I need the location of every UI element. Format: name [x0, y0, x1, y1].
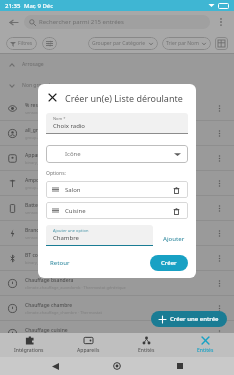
staticText: BT connexion	[25, 252, 58, 259]
staticText: 21:35	[5, 2, 21, 10]
button[interactable]: Options de all_grouped_persons	[213, 127, 226, 140]
button[interactable]: Ampoule entrée	[0, 171, 234, 195]
staticText: Options:	[46, 170, 66, 177]
staticText: binary_sensor.bt	[25, 260, 56, 265]
button[interactable]: Chauffage chambre	[0, 296, 234, 320]
button[interactable]: Colonnes	[215, 37, 228, 50]
staticText: group.ampoule_entree	[25, 185, 69, 190]
staticText: Entités	[138, 347, 155, 354]
staticText: sensor.charge_state	[25, 235, 63, 240]
button[interactable]: Filtres	[6, 37, 37, 50]
staticText: all_grouped_persons	[25, 127, 75, 134]
button[interactable]: Options de Chauffage cuisine	[213, 327, 226, 340]
staticText: Choix radio	[53, 122, 86, 130]
button[interactable]: Supprimer Salon	[170, 184, 182, 196]
staticText: Mar, 9 Déc	[24, 2, 54, 10]
staticText: Entités	[197, 347, 214, 354]
staticText: binary_sensor.cam	[25, 160, 60, 165]
button[interactable]: Appareil photo salon	[0, 146, 234, 170]
staticText: Créer	[161, 259, 177, 267]
button[interactable]: Créer	[150, 255, 188, 271]
button[interactable]: Chauffage cuisine	[0, 321, 234, 345]
staticText: Ampoule entrée	[25, 177, 64, 184]
staticText: Nom *	[53, 116, 66, 121]
staticText: Appareil photo salon	[25, 152, 75, 159]
button[interactable]: all_grouped_persons	[0, 121, 234, 145]
staticText: Icône	[65, 150, 81, 158]
staticText: Ajouter	[163, 235, 185, 243]
button[interactable]: Supprimer Cuisine	[170, 205, 182, 217]
staticText: Retour	[50, 259, 70, 267]
button[interactable]: Icône	[46, 145, 188, 163]
button[interactable]: Chauffage bsandera	[0, 271, 234, 295]
button[interactable]: Entités	[117, 333, 175, 357]
staticText: Appareils	[77, 347, 100, 354]
button[interactable]: Retour	[47, 358, 63, 374]
button[interactable]: Options de Brancher le chargeur	[213, 227, 226, 240]
staticText: Grouper par Catégorie	[92, 40, 146, 47]
staticText: climate.chauffage_cuisine	[25, 335, 74, 340]
staticText: Chauffage bsandera	[25, 277, 74, 284]
staticText: Filtres	[18, 40, 33, 47]
staticText: sensor.batterie_tel	[25, 210, 60, 215]
button[interactable]: Entités	[176, 333, 234, 357]
button[interactable]: Retour	[6, 15, 20, 29]
button[interactable]: Plus d'options	[214, 15, 228, 29]
staticText: Chauffage chambre	[25, 302, 73, 309]
button[interactable]: Fermer	[46, 91, 59, 104]
button[interactable]: Options de Appareil photo salon	[213, 152, 226, 165]
button[interactable]: Options de % restant batterie	[213, 102, 226, 115]
button[interactable]: Rechercher parmi 215 entrées	[24, 15, 210, 29]
button[interactable]: Appareils	[59, 333, 117, 357]
button[interactable]: Cuisine	[46, 202, 188, 219]
staticText: climate.chauffage_chambre · Thermostat	[25, 310, 102, 315]
button[interactable]: Accueil	[109, 358, 125, 374]
button[interactable]: Aperçu	[172, 358, 188, 374]
staticText: sensor.batterie_pourcent	[25, 110, 72, 115]
button[interactable]: Retour	[46, 256, 74, 270]
staticText: Salon	[65, 186, 81, 194]
button[interactable]: Non groupé	[0, 75, 234, 96]
button[interactable]: Nom *	[46, 113, 188, 133]
staticText: Brancher le chargeur	[25, 227, 76, 234]
button[interactable]: Brancher le chargeur	[0, 221, 234, 245]
button[interactable]: BT connexion	[0, 246, 234, 270]
staticText: Ajouter une option	[53, 228, 89, 233]
button[interactable]: Options de BT connexion	[213, 252, 226, 265]
staticText: Intégrations	[14, 347, 44, 354]
button[interactable]: Batterie téléphone	[0, 196, 234, 220]
button[interactable]: % restant batterie	[0, 96, 234, 120]
button[interactable]: Salon	[46, 181, 188, 198]
button[interactable]: Options de Batterie téléphone	[213, 202, 226, 215]
staticText: Arrosage	[22, 61, 44, 68]
button[interactable]: Ajouter	[160, 232, 188, 246]
staticText: Non groupé	[22, 82, 51, 89]
staticText: Cuisine	[65, 207, 86, 215]
button[interactable]: Créer une entrée	[151, 311, 227, 327]
button[interactable]: Options de Chauffage bsandera	[213, 277, 226, 290]
staticText: % restant batterie	[25, 102, 68, 109]
staticText: group.all_grouped	[25, 135, 60, 140]
button[interactable]: Options de Chauffage chambre	[213, 302, 226, 315]
staticText: Batterie téléphone	[25, 202, 70, 209]
staticText: Rechercher parmi 215 entrées	[39, 18, 124, 26]
button[interactable]: Ajouter une option	[46, 225, 153, 245]
staticText: Créer une entrée	[170, 315, 219, 323]
staticText: climate.chauffage_auxedomb · Thermostat …	[25, 285, 126, 290]
button[interactable]: Trier par Nom	[162, 37, 211, 50]
staticText: Trier par Nom	[166, 40, 199, 47]
staticText: Créer un(e) Liste déroulante	[65, 92, 183, 104]
button[interactable]: Réglages d'affichage	[42, 37, 57, 50]
staticText: Chauffage cuisine	[25, 327, 68, 334]
button[interactable]: Intégrations	[0, 333, 58, 357]
staticText: Chambre	[53, 234, 79, 242]
button[interactable]: Options de Ampoule entrée	[213, 177, 226, 190]
button[interactable]: Grouper par Catégorie	[88, 37, 158, 50]
